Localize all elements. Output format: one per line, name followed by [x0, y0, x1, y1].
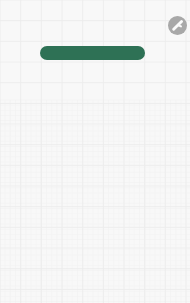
button[interactable] [40, 46, 145, 60]
button[interactable]: Navigate [168, 16, 187, 35]
